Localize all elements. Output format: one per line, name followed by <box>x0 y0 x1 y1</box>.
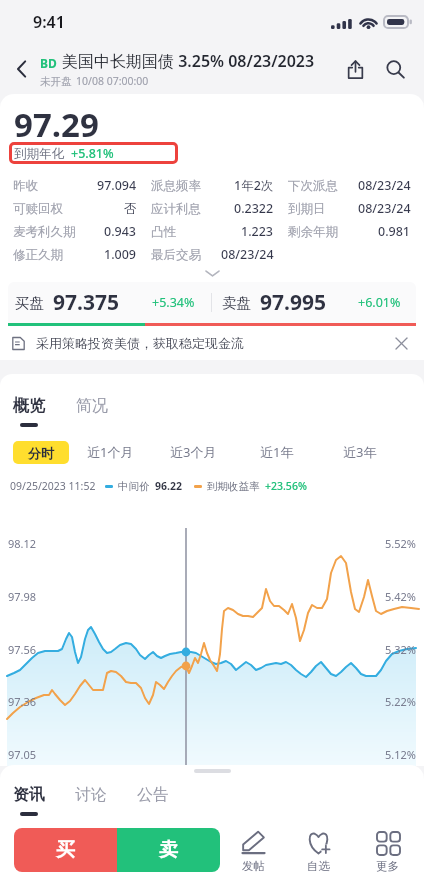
button[interactable]: 近3年 <box>318 430 401 474</box>
staticText: +5.34% <box>152 294 195 311</box>
staticText: 0.2322 <box>234 200 274 217</box>
staticText: 下次派息 <box>288 178 338 194</box>
staticText: 98.12 <box>8 536 37 551</box>
button[interactable]: 讨论 <box>75 777 107 805</box>
button[interactable]: 发帖 <box>220 828 286 894</box>
staticText: +5.81% <box>71 145 114 162</box>
button[interactable]: 采用策略投资美债，获取稳定现金流 <box>0 326 424 360</box>
staticText: 97.56 <box>8 642 37 657</box>
staticText: 昨收 <box>13 178 38 194</box>
button[interactable]: 买 <box>14 828 117 872</box>
button[interactable]: 近1年 <box>235 430 318 474</box>
staticText: 08/23/24 <box>358 200 411 217</box>
staticText: +23.56% <box>265 479 307 493</box>
staticText: 近1个月 <box>87 443 134 461</box>
staticText: 采用策略投资美债，获取稳定现金流 <box>36 335 244 351</box>
staticText: 凸性 <box>151 224 176 240</box>
button[interactable]: 概览 <box>13 374 45 427</box>
button[interactable]: Close <box>390 332 412 354</box>
staticText: 买盘 <box>15 294 44 312</box>
staticText: 麦考利久期 <box>13 224 76 240</box>
staticText: 到期年化 <box>14 146 64 162</box>
staticText: 5.22% <box>385 694 416 709</box>
button[interactable]: 资讯 <box>13 777 45 816</box>
button[interactable]: 自选 <box>286 828 351 894</box>
staticText: 到期日 <box>288 201 326 217</box>
staticText: 0.981 <box>378 223 411 240</box>
staticText: 卖盘 <box>222 294 251 312</box>
button[interactable]: 卖 <box>117 828 220 872</box>
staticText: 97.36 <box>8 694 37 709</box>
button[interactable]: Back <box>4 51 40 87</box>
staticText: 1年2次 <box>234 177 274 194</box>
staticText: 1.223 <box>241 223 274 240</box>
staticText: 1.009 <box>104 246 137 263</box>
button[interactable]: 近1个月 <box>69 430 152 474</box>
staticText: 96.22 <box>155 479 182 493</box>
staticText: 概览 <box>13 396 45 416</box>
staticText: 应计利息 <box>151 201 201 217</box>
button[interactable]: 更多 <box>351 828 424 894</box>
staticText: 97.29 <box>14 102 99 147</box>
staticText: 到期收益率 <box>207 480 260 493</box>
staticText: 中间价 <box>118 480 150 493</box>
button[interactable]: 卖盘 <box>212 282 416 323</box>
staticText: 9:41 <box>33 11 65 33</box>
staticText: 简况 <box>76 396 108 416</box>
staticText: 97.375 <box>53 288 119 317</box>
staticText: 公告 <box>137 785 169 805</box>
staticText: 10/08 07:00:00 <box>76 74 149 88</box>
staticText: 发帖 <box>242 859 265 873</box>
button[interactable]: 近3个月 <box>152 430 235 474</box>
button[interactable]: Share <box>339 53 371 85</box>
staticText: 否 <box>124 201 137 217</box>
staticText: 卖 <box>159 838 178 862</box>
staticText: BD <box>40 55 57 71</box>
staticText: 最后交易 <box>151 247 201 263</box>
staticText: 5.42% <box>385 589 416 604</box>
staticText: 近3年 <box>343 443 377 461</box>
staticText: 可赎回权 <box>13 201 63 217</box>
staticText: 09/25/2023 11:52 <box>10 479 96 493</box>
staticText: 剩余年期 <box>288 224 338 240</box>
staticText: 资讯 <box>13 785 45 805</box>
staticText: 自选 <box>307 859 330 873</box>
staticText: +6.01% <box>358 294 401 311</box>
staticText: 更多 <box>376 859 399 873</box>
staticText: 0.943 <box>104 223 137 240</box>
button[interactable]: 简况 <box>76 374 108 416</box>
staticText: 买 <box>56 838 75 862</box>
staticText: 97.98 <box>8 589 37 604</box>
staticText: 美国中长期国债 3.25% 08/23/2023 <box>62 50 315 72</box>
button[interactable]: Search <box>379 53 411 85</box>
button[interactable]: 买盘 <box>8 282 211 323</box>
staticText: 分时 <box>28 445 54 461</box>
staticText: 08/23/24 <box>221 246 274 263</box>
staticText: 修正久期 <box>13 247 63 263</box>
button[interactable]: 分时 <box>13 441 69 464</box>
staticText: 讨论 <box>75 785 107 805</box>
staticText: 近1年 <box>260 443 294 461</box>
button[interactable]: Expand <box>13 266 411 281</box>
staticText: 08/23/24 <box>358 177 411 194</box>
staticText: 派息频率 <box>151 178 201 194</box>
staticText: 5.12% <box>385 747 416 762</box>
staticText: 97.094 <box>97 177 137 194</box>
staticText: 未开盘 <box>40 75 72 88</box>
staticText: 5.52% <box>385 536 416 551</box>
staticText: 97.05 <box>8 747 37 762</box>
staticText: 5.32% <box>385 642 416 657</box>
button[interactable]: 公告 <box>137 777 169 805</box>
staticText: 97.995 <box>260 288 326 317</box>
staticText: 近3个月 <box>170 443 217 461</box>
